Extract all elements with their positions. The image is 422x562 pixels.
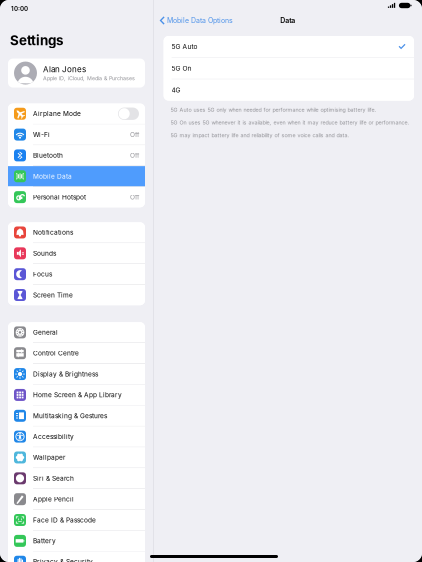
button[interactable]: Airplane Mode xyxy=(8,104,145,124)
staticText: Apple Pencil xyxy=(33,495,74,503)
button[interactable]: Bluetooth xyxy=(8,145,145,166)
staticText: Bluetooth xyxy=(33,151,63,159)
button[interactable]: 5G On xyxy=(164,58,414,79)
staticText: 5G Auto xyxy=(172,43,198,50)
button[interactable]: Wi-Fi xyxy=(8,124,145,145)
button[interactable]: Home Screen & App Library xyxy=(8,385,145,405)
staticText: Data xyxy=(280,16,295,25)
button[interactable]: Screen Time xyxy=(8,285,145,305)
staticText: Settings xyxy=(10,32,63,48)
staticText: Multitasking & Gestures xyxy=(33,412,107,420)
staticText: Mobile Data xyxy=(33,172,72,180)
button[interactable]: 5G Auto xyxy=(164,36,414,57)
button[interactable]: Alan Jones xyxy=(0,59,153,88)
button[interactable]: Accessibility xyxy=(8,426,145,447)
staticText: 5G may impact battery life and reliabili… xyxy=(171,132,350,139)
button[interactable]: Display & Brightness xyxy=(8,364,145,384)
staticText: 4G xyxy=(172,86,181,94)
button[interactable]: General xyxy=(8,322,145,343)
button[interactable]: Focus xyxy=(8,264,145,284)
button[interactable]: Sounds xyxy=(8,243,145,264)
staticText: Battery xyxy=(33,537,56,545)
button[interactable]: Personal Hotspot xyxy=(8,187,145,207)
staticText: Off xyxy=(130,131,139,138)
button[interactable]: Mobile Data xyxy=(8,166,145,186)
staticText: Wallpaper xyxy=(33,453,65,461)
button[interactable]: Mobile Data Options xyxy=(154,11,237,30)
staticText: Sounds xyxy=(33,249,56,257)
staticText: Focus xyxy=(33,270,52,278)
staticText: Siri & Search xyxy=(33,474,74,482)
staticText: 5G Auto uses 5G only when needed for per… xyxy=(171,107,377,113)
staticText: 10:00 xyxy=(11,5,28,12)
staticText: 5G On xyxy=(172,64,192,72)
button[interactable]: 4G xyxy=(164,79,414,101)
staticText: Accessibility xyxy=(33,433,74,441)
staticText: Display & Brightness xyxy=(33,370,98,378)
staticText: Control Centre xyxy=(33,349,79,357)
button[interactable]: Siri & Search xyxy=(8,468,145,489)
staticText: Privacy & Security xyxy=(33,558,93,562)
button[interactable]: Privacy & Security xyxy=(8,552,145,562)
button[interactable]: Multitasking & Gestures xyxy=(8,406,145,426)
staticText: Personal Hotspot xyxy=(33,193,86,201)
staticText: Notifications xyxy=(33,228,73,236)
button[interactable]: Apple Pencil xyxy=(8,489,145,509)
staticText: Face ID & Passcode xyxy=(33,516,96,524)
staticText: Apple ID, iCloud, Media & Purchases xyxy=(43,75,135,82)
staticText: Wi-Fi xyxy=(33,131,50,138)
staticText: Alan Jones xyxy=(43,64,86,74)
button[interactable]: Face ID & Passcode xyxy=(8,510,145,530)
staticText: Home Screen & App Library xyxy=(33,391,122,399)
staticText: Off xyxy=(130,151,139,159)
staticText: 5G On uses 5G whenever it is available, … xyxy=(171,119,410,126)
button[interactable]: Wallpaper xyxy=(8,447,145,468)
staticText: General xyxy=(33,328,58,336)
button[interactable]: Notifications xyxy=(8,222,145,243)
staticText: Airplane Mode xyxy=(33,110,81,118)
staticText: Screen Time xyxy=(33,291,73,299)
button[interactable]: Battery xyxy=(8,531,145,551)
button[interactable]: Control Centre xyxy=(8,343,145,363)
staticText: Off xyxy=(130,193,139,201)
staticText: Mobile Data Options xyxy=(167,16,233,25)
